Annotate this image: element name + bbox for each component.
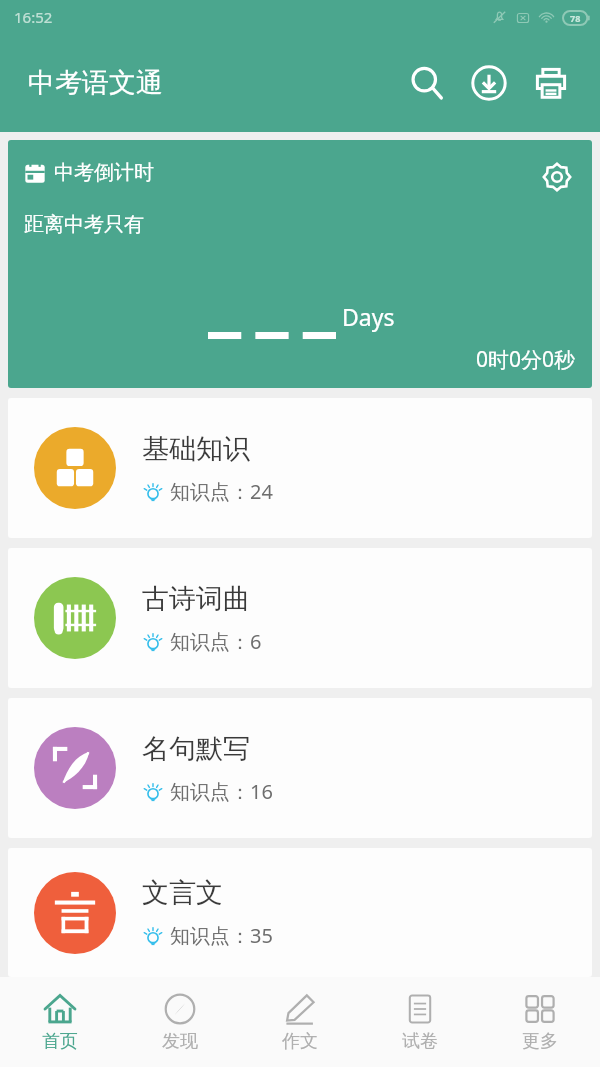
staticText: 文言文 bbox=[142, 876, 223, 910]
button[interactable]: 作文 bbox=[240, 977, 360, 1067]
staticText: 古诗词曲 bbox=[142, 582, 250, 616]
staticText: 名句默写 bbox=[142, 732, 250, 766]
button[interactable]: 发现 bbox=[120, 977, 240, 1067]
staticText: 基础知识 bbox=[142, 432, 250, 466]
staticText: Days bbox=[342, 301, 395, 332]
staticText: 16:52 bbox=[14, 7, 53, 27]
staticText: 更多 bbox=[522, 1030, 558, 1053]
staticText: 中考倒计时 bbox=[54, 160, 154, 185]
button[interactable]: Download bbox=[458, 52, 520, 114]
staticText: 知识点：16 bbox=[170, 778, 273, 805]
staticText: 知识点：24 bbox=[170, 478, 273, 505]
button[interactable]: 文言文 bbox=[8, 848, 592, 977]
staticText: 知识点：6 bbox=[170, 628, 262, 655]
staticText: 首页 bbox=[42, 1030, 78, 1053]
staticText: 距离中考只有 bbox=[24, 212, 144, 237]
staticText: 发现 bbox=[162, 1030, 198, 1053]
button[interactable]: 名句默写 bbox=[8, 698, 592, 838]
staticText: 78 bbox=[570, 12, 581, 24]
staticText: 中考语文通 bbox=[28, 66, 163, 100]
staticText: 试卷 bbox=[402, 1030, 438, 1053]
button[interactable]: Settings bbox=[536, 156, 578, 198]
button[interactable]: 首页 bbox=[0, 977, 120, 1067]
button[interactable]: Search bbox=[396, 52, 458, 114]
staticText: 作文 bbox=[282, 1030, 318, 1053]
button[interactable]: 试卷 bbox=[360, 977, 480, 1067]
button[interactable]: 古诗词曲 bbox=[8, 548, 592, 688]
button[interactable]: 中考倒计时 bbox=[8, 140, 592, 388]
staticText: 知识点：35 bbox=[170, 922, 273, 949]
button[interactable]: Print bbox=[520, 52, 582, 114]
staticText: 0时0分0秒 bbox=[476, 345, 576, 374]
button[interactable]: 基础知识 bbox=[8, 398, 592, 538]
button[interactable]: 更多 bbox=[480, 977, 600, 1067]
